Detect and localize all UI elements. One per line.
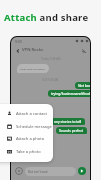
staticText: Attach a contact [16,111,47,117]
staticText: But can't wait [28,170,48,174]
staticText: Today 9:28 AM [41,57,61,61]
staticText: any stories to tell [54,119,82,124]
staticText: Schedule message [16,124,52,130]
staticText: 9:29 9:45 AM [42,78,59,82]
staticText: What have you been? [20,67,46,70]
staticText: Attach a photo [16,136,45,142]
button[interactable]: Attach a contact [0,107,53,120]
button[interactable]: Back [14,47,21,54]
button[interactable]: Call [80,47,87,54]
staticText: Not bad. Just [78,83,90,88]
button[interactable]: But can't wait [25,167,76,176]
staticText: Attach and share [4,11,89,24]
staticText: Take a photo [16,149,41,155]
button[interactable]: Schedule message [0,120,53,133]
button[interactable]: Attach a photo [0,132,53,145]
button[interactable]: Send [78,167,86,175]
staticText: Sounds perfect [59,128,84,133]
button[interactable]: Attach [15,167,23,175]
button[interactable]: Take a photo [0,145,53,158]
staticText: 9:30 [15,39,22,44]
staticText: trying/businessandtfood [51,91,90,96]
staticText: VPN Rocks [22,47,44,53]
